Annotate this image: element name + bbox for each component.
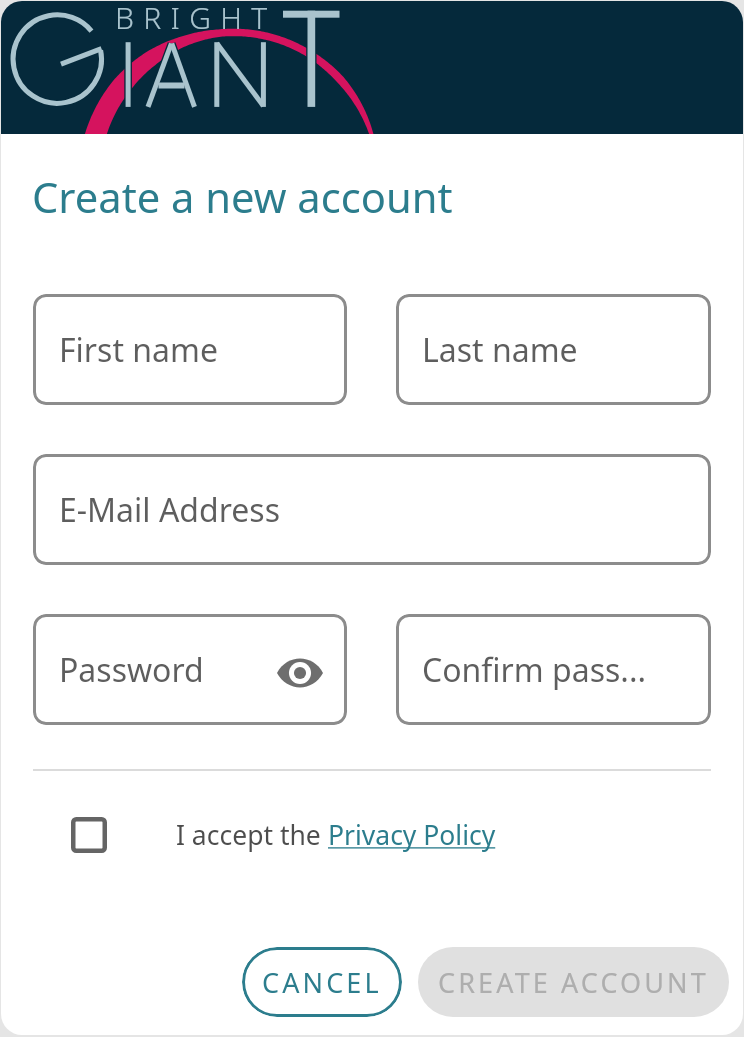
staticText: CANCEL <box>262 964 382 1001</box>
staticText: Confirm pass... <box>422 648 647 692</box>
staticText: First name <box>59 328 218 372</box>
button[interactable]: Privacy Policy <box>328 817 496 853</box>
staticText: E-Mail Address <box>59 488 280 532</box>
button[interactable]: First name <box>33 294 347 405</box>
staticText: Password <box>59 648 204 692</box>
button[interactable]: E-Mail Address <box>33 454 711 565</box>
button[interactable]: Confirm pass... <box>396 614 711 725</box>
button[interactable]: Show password <box>277 657 323 689</box>
button[interactable]: CANCEL <box>242 947 402 1017</box>
staticText: CREATE ACCOUNT <box>438 964 709 1001</box>
staticText: Create a new account <box>32 168 453 225</box>
button[interactable]: I accept the Privacy Policy <box>71 817 107 853</box>
button[interactable]: Password <box>33 614 347 725</box>
staticText: I accept the <box>176 817 328 853</box>
button[interactable]: CREATE ACCOUNT <box>418 947 729 1017</box>
staticText: BRIGHT <box>115 1 277 38</box>
button[interactable]: Last name <box>396 294 711 405</box>
staticText: Last name <box>422 328 578 372</box>
